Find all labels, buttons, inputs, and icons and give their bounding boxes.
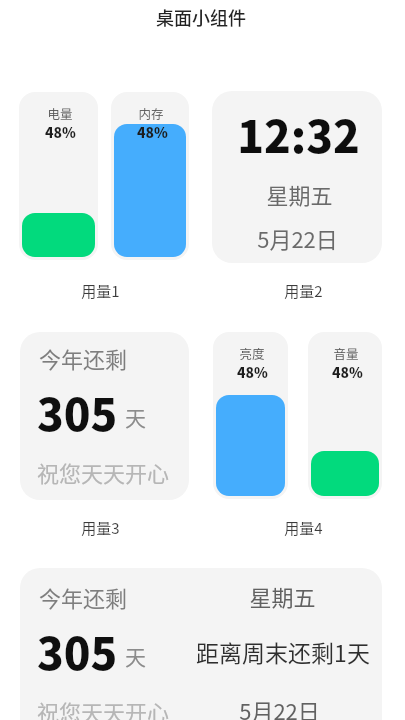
staticText: 亮度 [239, 344, 265, 362]
staticText: 音量 [333, 344, 359, 362]
staticText: 今年还剩 [39, 342, 128, 374]
staticText: 今年还剩 [39, 581, 128, 613]
staticText: 星期五 [249, 580, 316, 612]
staticText: 天 [125, 641, 146, 671]
button[interactable] [20, 332, 189, 500]
staticText: 48% [332, 362, 363, 382]
staticText: 距离周末还剩1天 [196, 635, 370, 668]
staticText: 48% [137, 122, 168, 142]
staticText: 用量3 [81, 517, 120, 539]
button[interactable] [20, 568, 382, 720]
button[interactable]: 内存 [111, 92, 189, 260]
button[interactable] [212, 91, 382, 263]
button[interactable]: 亮度 [213, 332, 288, 499]
staticText: 用量1 [81, 280, 120, 302]
staticText: 用量2 [284, 280, 323, 302]
staticText: 桌面小组件 [156, 4, 246, 30]
staticText: 电量 [47, 104, 73, 122]
button[interactable]: 音量 [308, 332, 382, 499]
staticText: 用量4 [284, 517, 323, 539]
staticText: 48% [237, 362, 268, 382]
staticText: 5月22日 [239, 694, 320, 720]
staticText: 5月22日 [257, 222, 338, 254]
staticText: 祝您天天开心 [37, 695, 170, 720]
staticText: 内存 [138, 104, 164, 122]
staticText: 305 [37, 380, 118, 444]
staticText: 天 [125, 402, 146, 432]
button[interactable]: 电量 [19, 92, 98, 260]
staticText: 祝您天天开心 [37, 456, 170, 488]
staticText: 12:32 [237, 102, 360, 166]
staticText: 305 [37, 619, 118, 683]
staticText: 48% [45, 122, 76, 142]
staticText: 星期五 [266, 178, 333, 210]
